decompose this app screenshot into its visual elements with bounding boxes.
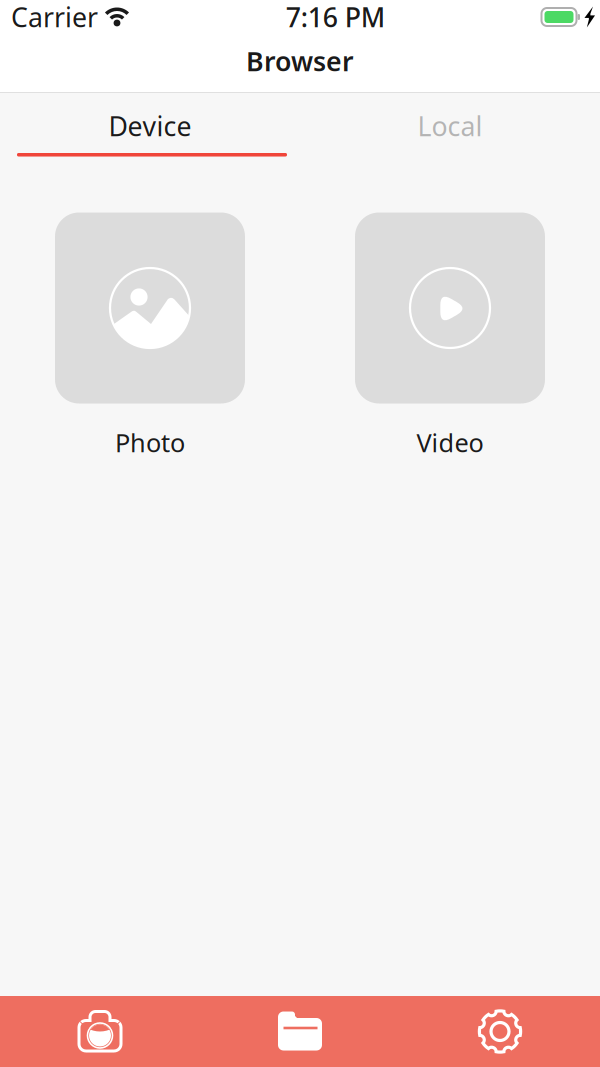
- staticText: Device: [108, 108, 191, 144]
- button[interactable]: Files: [200, 996, 400, 1067]
- staticText: 7:16 PM: [286, 0, 385, 35]
- button[interactable]: Local: [300, 103, 600, 149]
- staticText: Photo: [115, 425, 185, 459]
- staticText: Carrier: [11, 0, 98, 35]
- staticText: Local: [417, 108, 482, 144]
- staticText: Video: [416, 425, 483, 459]
- staticText: Browser: [246, 43, 354, 79]
- button[interactable]: Device: [0, 103, 300, 149]
- button[interactable]: Settings: [400, 996, 600, 1067]
- button[interactable]: Photo: [55, 212, 245, 459]
- button[interactable]: Video: [355, 212, 545, 459]
- button[interactable]: Camera: [0, 996, 200, 1067]
